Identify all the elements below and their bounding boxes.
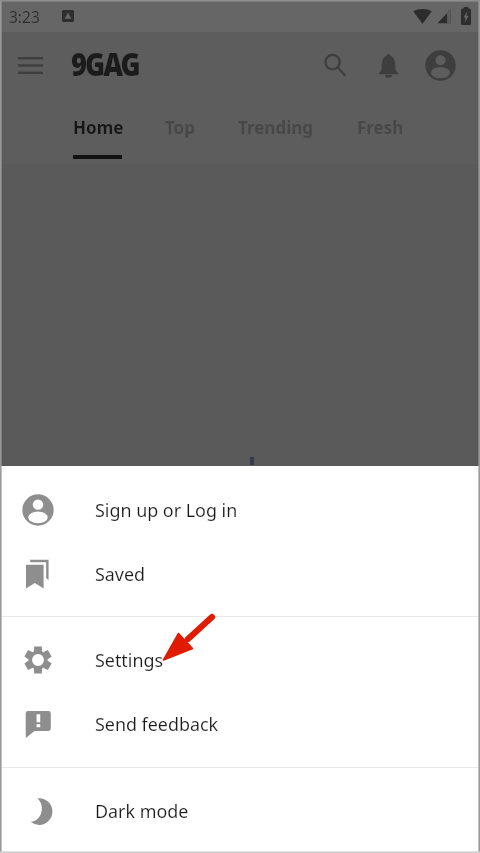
- staticText: Fresh: [357, 116, 404, 139]
- staticText: Saved: [95, 562, 146, 586]
- staticText: 3:23: [9, 6, 40, 27]
- button[interactable]: Send feedback: [0, 692, 480, 756]
- button[interactable]: Open navigation menu: [6, 41, 54, 89]
- staticText: Sign up or Log in: [95, 498, 238, 522]
- button[interactable]: Trending: [224, 98, 328, 164]
- staticText: Dark mode: [95, 799, 189, 823]
- button[interactable]: Settings: [0, 628, 480, 692]
- button[interactable]: Notifications: [366, 43, 410, 87]
- staticText: 9GAG: [71, 43, 140, 85]
- staticText: Trending: [238, 116, 314, 139]
- button[interactable]: Sign up or Log in: [0, 478, 480, 542]
- button[interactable]: Profile: [418, 43, 462, 87]
- button[interactable]: Dark mode: [0, 779, 480, 843]
- staticText: Home: [73, 116, 124, 139]
- button[interactable]: Fresh: [343, 98, 418, 164]
- staticText: Settings: [95, 648, 164, 672]
- button[interactable]: Home: [59, 98, 138, 164]
- button[interactable]: Top: [151, 98, 209, 164]
- button[interactable]: Saved: [0, 542, 480, 606]
- staticText: Send feedback: [95, 712, 219, 736]
- staticText: Top: [165, 116, 195, 139]
- button[interactable]: Search: [313, 43, 357, 87]
